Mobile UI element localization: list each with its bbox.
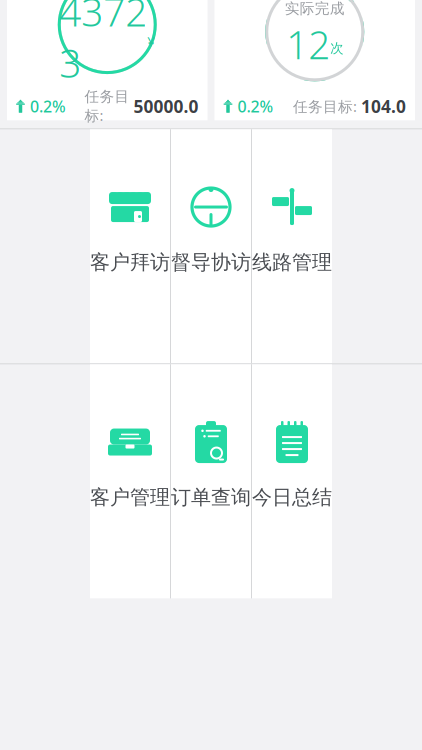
staticText: 客户拜访 [90,250,170,275]
button[interactable]: 达成率: [7,0,207,120]
staticText: 0.2% [30,96,66,117]
button[interactable]: 客户拜访 [90,129,170,363]
button[interactable]: 今日总结 [252,364,332,598]
staticText: 次 [330,40,343,56]
staticText: 0.2% [237,96,273,117]
button[interactable]: 客户管理 [90,364,170,598]
staticText: 客户管理 [90,485,170,510]
staticText: ¥ [147,32,155,50]
staticText: 12 [286,19,330,70]
button[interactable]: 订单查询 [171,364,251,598]
button[interactable]: 达成率: [214,0,415,120]
staticText: 43723 [59,0,147,88]
staticText: 104.0 [361,95,406,118]
staticText: 订单查询 [171,485,251,510]
staticText: 任务目标: [293,97,357,116]
staticText: 任务目标: [84,88,129,125]
staticText: 督导协访 [171,250,251,275]
staticText: 实际完成 [285,0,345,18]
button[interactable]: 督导协访 [171,129,251,363]
button[interactable]: 线路管理 [252,129,332,363]
staticText: 50000.0 [133,95,198,118]
staticText: 今日总结 [252,485,332,510]
staticText: 线路管理 [252,250,332,275]
